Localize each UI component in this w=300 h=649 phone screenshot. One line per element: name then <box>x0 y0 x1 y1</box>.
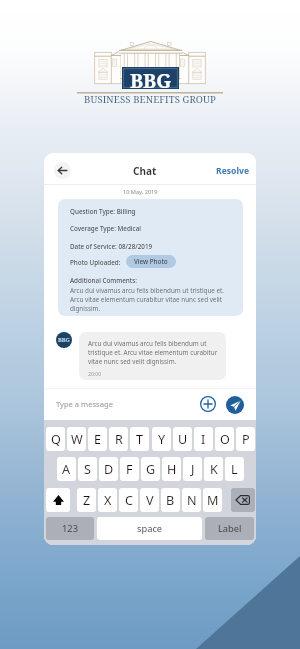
button[interactable]: Arcu dui vivamus arcu felis bibendum ut … <box>79 332 226 380</box>
staticText: A <box>62 461 71 478</box>
button[interactable]: Type a message <box>56 399 113 409</box>
staticText: Resolve <box>216 165 250 177</box>
button[interactable]: J <box>183 457 202 481</box>
button[interactable]: F <box>120 457 139 481</box>
staticText: Type a message <box>56 399 113 409</box>
button[interactable]: V <box>140 488 159 512</box>
staticText: space <box>137 522 163 535</box>
button[interactable]: X <box>98 488 117 512</box>
button[interactable]: M <box>203 488 222 512</box>
staticText: BBG <box>130 67 172 89</box>
button[interactable]: 123 <box>46 517 94 540</box>
button[interactable]: O <box>215 427 234 451</box>
staticText: B <box>166 492 175 509</box>
staticText: X <box>104 492 112 509</box>
button[interactable]: R <box>109 427 128 451</box>
button[interactable]: space <box>97 517 202 540</box>
button[interactable]: Resolve <box>216 165 250 177</box>
staticText: J <box>191 461 195 478</box>
staticText: V <box>146 492 154 509</box>
button[interactable]: H <box>162 457 181 481</box>
staticText: Arcu dui vivamus arcu felis bibendum ut … <box>88 339 222 366</box>
button[interactable]: L <box>225 457 244 481</box>
staticText: View Photo <box>134 257 168 266</box>
staticText: R <box>115 431 123 448</box>
staticText: BUSINESS BENEFITS GROUP <box>84 93 216 106</box>
button[interactable]: Shift <box>46 488 70 512</box>
button[interactable]: G <box>141 457 160 481</box>
staticText: H <box>167 461 177 478</box>
staticText: Question Type: Billing <box>70 207 136 216</box>
staticText: Coverage Type: Medical <box>70 224 141 233</box>
staticText: Date of Service: 08/28/2019 <box>70 242 153 251</box>
staticText: G <box>146 461 156 478</box>
button[interactable]: Send <box>226 396 244 414</box>
button[interactable]: Back <box>54 162 71 179</box>
staticText: O <box>220 431 230 448</box>
staticText: 20:00 <box>88 370 102 377</box>
button[interactable]: K <box>204 457 223 481</box>
button[interactable]: Q <box>46 427 65 451</box>
staticText: 10 May, 2019 <box>123 188 158 196</box>
button[interactable]: Label <box>205 517 254 540</box>
button[interactable]: E <box>88 427 107 451</box>
button[interactable]: View Photo <box>126 255 176 268</box>
button[interactable]: Y <box>152 427 171 451</box>
button[interactable]: Z <box>77 488 96 512</box>
staticText: N <box>187 492 197 509</box>
staticText: Y <box>158 431 166 448</box>
staticText: Additional Comments: <box>70 276 137 285</box>
staticText: S <box>84 461 91 478</box>
staticText: C <box>125 492 133 509</box>
button[interactable]: D <box>99 457 118 481</box>
button[interactable]: C <box>119 488 138 512</box>
staticText: Arcu dui vivamus arcu felis bibendum ut … <box>70 286 232 313</box>
staticText: L <box>231 461 238 478</box>
button[interactable]: N <box>182 488 201 512</box>
button[interactable]: Add attachment <box>200 396 216 412</box>
button[interactable]: A <box>57 457 76 481</box>
staticText: T <box>136 431 144 448</box>
staticText: P <box>242 431 250 448</box>
staticText: E <box>94 431 102 448</box>
button[interactable]: U <box>173 427 192 451</box>
staticText: W <box>71 431 83 448</box>
button[interactable]: P <box>236 427 255 451</box>
staticText: M <box>207 492 219 509</box>
staticText: K <box>210 461 218 478</box>
button[interactable]: Chat <box>133 164 157 178</box>
staticText: Chat <box>133 164 157 178</box>
staticText: D <box>104 461 114 478</box>
button[interactable]: I <box>194 427 213 451</box>
staticText: BBG <box>58 336 70 344</box>
staticText: I <box>201 431 206 448</box>
staticText: U <box>178 431 188 448</box>
button[interactable]: Backspace <box>231 488 255 512</box>
button[interactable]: W <box>67 427 86 451</box>
staticText: Label <box>218 522 242 535</box>
staticText: Z <box>83 492 91 509</box>
button[interactable]: T <box>130 427 149 451</box>
staticText: Photo Uploaded: <box>70 258 121 267</box>
staticText: Q <box>51 431 61 448</box>
button[interactable]: S <box>78 457 97 481</box>
staticText: F <box>126 461 133 478</box>
button[interactable]: B <box>161 488 180 512</box>
staticText: 123 <box>62 522 78 535</box>
button[interactable]: Question Type: Billing <box>58 199 243 316</box>
